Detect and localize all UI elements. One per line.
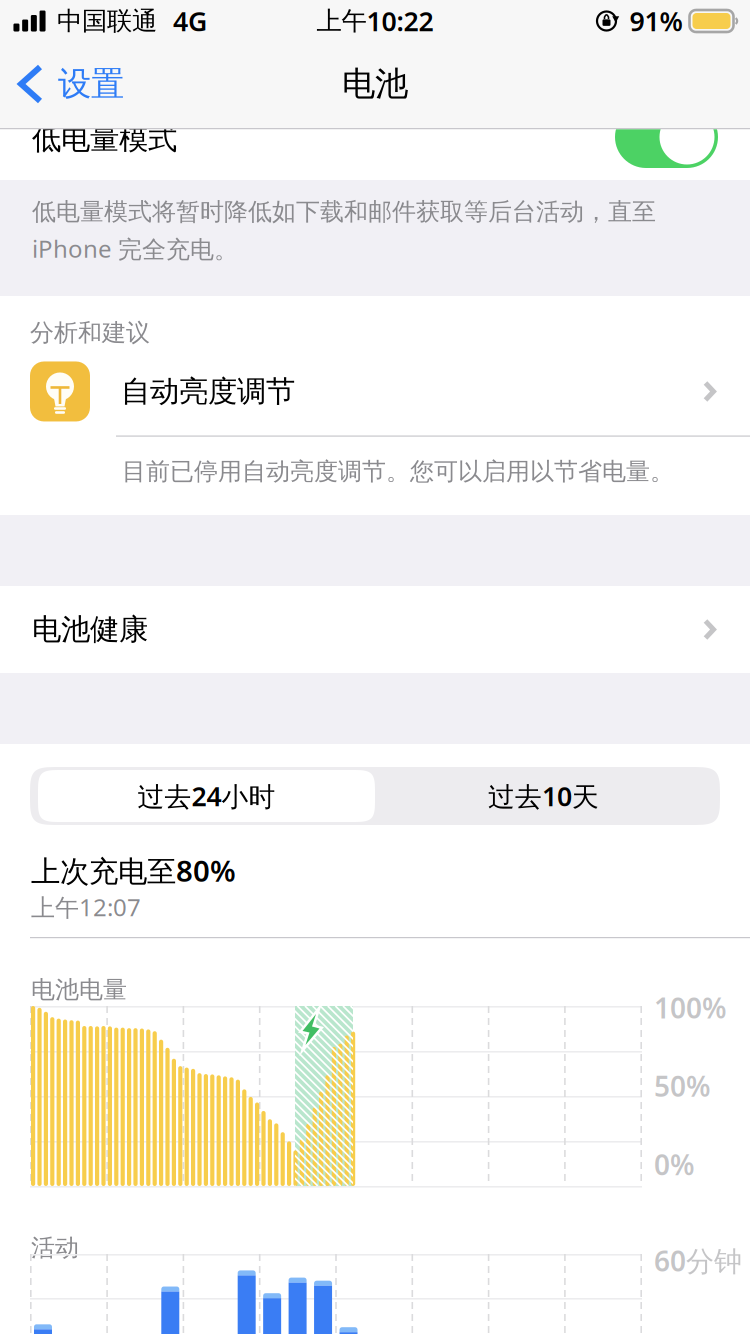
staticText: 100% bbox=[654, 989, 727, 1026]
staticText: 上午12:07 bbox=[31, 891, 141, 923]
staticText: 电池电量 bbox=[31, 975, 127, 1004]
button[interactable]: 过去10天 bbox=[375, 770, 712, 822]
button[interactable]: 低电量模式 bbox=[0, 128, 750, 180]
staticText: 活动 bbox=[31, 1233, 79, 1262]
staticText: 60分钟 bbox=[654, 1242, 742, 1279]
staticText: 目前已停用自动亮度调节。您可以启用以节省电量。 bbox=[122, 457, 674, 486]
staticText: 上次充电至80% bbox=[31, 851, 236, 890]
staticText: 低电量模式将暂时降低如下载和邮件获取等后台活动，直至 bbox=[32, 197, 656, 226]
staticText: 过去24小时 bbox=[137, 778, 275, 814]
staticText: 自动亮度调节 bbox=[121, 373, 295, 409]
staticText: 过去10天 bbox=[488, 778, 599, 814]
button[interactable]: 自动亮度调节 bbox=[0, 347, 750, 435]
button[interactable]: 过去24小时 bbox=[38, 770, 375, 822]
staticText: 低电量模式 bbox=[32, 121, 177, 157]
button[interactable]: 设置 bbox=[0, 42, 134, 126]
staticText: 电池健康 bbox=[32, 611, 148, 647]
staticText: 4G bbox=[173, 3, 207, 39]
staticText: 上午 bbox=[316, 5, 366, 36]
staticText: iPhone 完全充电。 bbox=[32, 232, 238, 264]
staticText: 电池 bbox=[342, 63, 408, 104]
button[interactable]: 电池健康 bbox=[0, 586, 750, 673]
staticText: 中国联通 bbox=[57, 5, 157, 36]
staticText: 设置 bbox=[58, 63, 124, 104]
staticText: 0% bbox=[654, 1146, 695, 1183]
staticText: 10:22 bbox=[366, 3, 433, 39]
staticText: 分析和建议 bbox=[30, 318, 150, 347]
staticText: 91% bbox=[629, 3, 682, 39]
staticText: 50% bbox=[654, 1067, 711, 1105]
